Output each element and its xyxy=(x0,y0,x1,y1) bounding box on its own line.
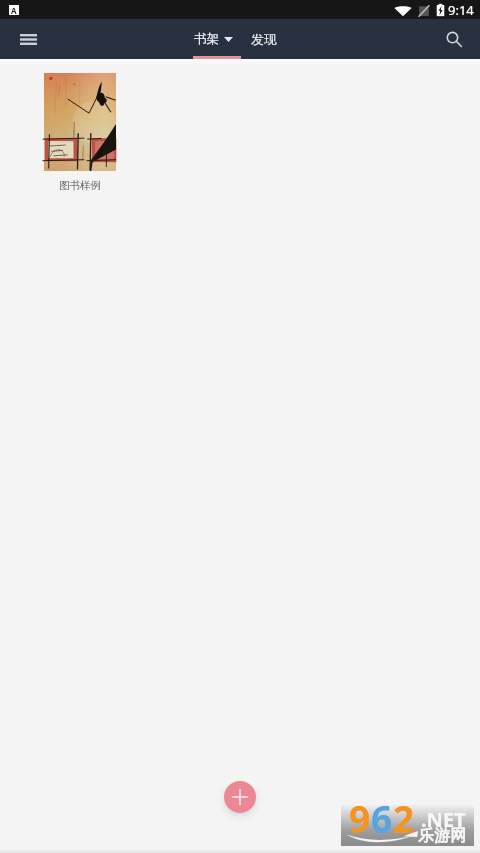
staticText: 书架 xyxy=(194,31,219,47)
staticText: 9 xyxy=(349,793,371,834)
button[interactable]: Menu xyxy=(0,19,56,59)
button[interactable]: 书架 xyxy=(186,19,241,59)
staticText: 图书样例 xyxy=(59,179,101,192)
staticText: 9:14 xyxy=(448,1,474,19)
button[interactable]: 发现 xyxy=(241,19,285,59)
staticText: A xyxy=(11,5,17,15)
button[interactable]: 图书样例 xyxy=(44,73,116,192)
button[interactable]: Add book xyxy=(224,781,256,813)
button[interactable]: Search xyxy=(430,19,480,59)
staticText: 乐游网 xyxy=(418,826,466,846)
staticText: 2 xyxy=(393,793,415,834)
staticText: 发现 xyxy=(251,31,277,47)
staticText: .NET xyxy=(421,806,466,833)
staticText: 6 xyxy=(371,793,393,834)
